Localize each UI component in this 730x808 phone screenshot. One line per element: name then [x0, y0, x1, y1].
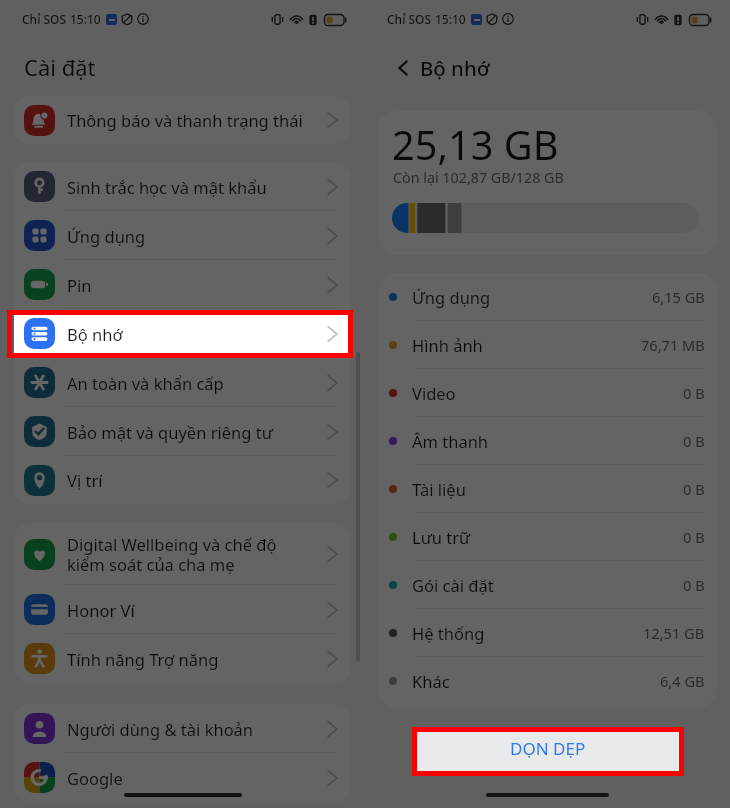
staticText: Digital Wellbeing và chế độ kiểm soát củ… [67, 533, 277, 576]
staticText: 15:10 [70, 11, 101, 27]
staticText: Còn lại 102,87 GB/128 GB [393, 168, 564, 187]
staticText: Honor Ví [67, 599, 135, 621]
button[interactable]: Video [378, 369, 717, 417]
staticText: Sinh trắc học và mật khẩu [67, 176, 267, 198]
staticText: Chỉ SOS [387, 11, 432, 27]
staticText: 6,4 GB [660, 671, 705, 691]
staticText: Bộ nhớ [67, 323, 123, 345]
staticText: Google [67, 767, 123, 789]
staticText: DỌN DẸP [510, 737, 586, 760]
button[interactable]: Tài liệu [378, 465, 717, 513]
staticText: 0 B [683, 575, 705, 595]
button[interactable]: Lưu trữ [378, 513, 717, 561]
staticText: Cài đặt [24, 52, 96, 82]
staticText: 15:10 [435, 11, 466, 27]
staticText: 6,15 GB [652, 287, 705, 307]
button[interactable]: Honor Ví [14, 585, 351, 634]
button[interactable]: Ứng dụng [14, 211, 351, 260]
staticText: 0 B [683, 527, 705, 547]
staticText: Tính năng Trợ năng [67, 648, 219, 670]
staticText: Gói cài đặt [412, 574, 494, 596]
staticText: Khác [412, 670, 450, 692]
button[interactable]: Người dùng & tài khoản [14, 704, 351, 753]
button[interactable]: Bộ nhớ [14, 313, 351, 354]
button[interactable]: Gói cài đặt [378, 561, 717, 609]
staticText: Ứng dụng [412, 286, 491, 308]
button[interactable]: An toàn và khẩn cấp [14, 358, 351, 407]
button[interactable]: Âm thanh [378, 417, 717, 465]
staticText: 25,13 GB [392, 118, 559, 172]
staticText: Chỉ SOS [22, 11, 67, 27]
staticText: Hệ thống [412, 622, 485, 644]
button[interactable]: Digital Wellbeing và chế độ kiểm soát củ… [14, 523, 351, 585]
staticText: Pin [67, 274, 92, 296]
staticText: Tài liệu [412, 478, 466, 500]
staticText: Lưu trữ [412, 526, 471, 548]
button[interactable]: Sinh trắc học và mật khẩu [14, 162, 351, 211]
staticText: Vị trí [67, 469, 103, 491]
staticText: Ứng dụng [67, 225, 146, 247]
button[interactable]: Hình ảnh [378, 321, 717, 369]
staticText: Bộ nhớ [67, 323, 123, 345]
staticText: Người dùng & tài khoản [67, 718, 254, 740]
button[interactable]: Tính năng Trợ năng [14, 634, 351, 683]
button[interactable]: Thông báo và thanh trạng thái [14, 96, 351, 144]
button[interactable]: Pin [14, 260, 351, 309]
button[interactable]: Back [389, 54, 417, 82]
button[interactable]: Google [14, 753, 351, 802]
button[interactable]: Hệ thống [378, 609, 717, 657]
button[interactable]: Vị trí [14, 456, 351, 504]
staticText: An toàn và khẩn cấp [67, 372, 224, 394]
button[interactable]: Bảo mật và quyền riêng tư [14, 407, 351, 456]
staticText: Hình ảnh [412, 334, 483, 356]
staticText: Thông báo và thanh trạng thái [67, 109, 303, 131]
staticText: 76,71 MB [641, 335, 705, 355]
button[interactable]: DỌN DẸP [415, 729, 681, 771]
button[interactable]: Bộ nhớ [14, 309, 351, 358]
staticText: 0 B [683, 383, 705, 403]
staticText: Bảo mật và quyền riêng tư [67, 421, 273, 443]
staticText: Bộ nhớ [420, 54, 490, 82]
staticText: Video [412, 382, 456, 404]
button[interactable]: Khác [378, 657, 717, 705]
staticText: 0 B [683, 431, 705, 451]
button[interactable]: Ứng dụng [378, 273, 717, 321]
staticText: Âm thanh [412, 430, 489, 452]
staticText: 0 B [683, 479, 705, 499]
staticText: 12,51 GB [643, 623, 705, 643]
